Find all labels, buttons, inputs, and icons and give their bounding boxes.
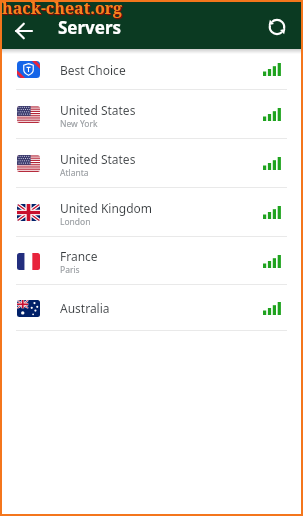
staticText: France: [60, 248, 98, 264]
button[interactable]: Australia: [0, 285, 303, 331]
button[interactable]: [13, 23, 33, 39]
staticText: Australia: [60, 300, 110, 316]
staticText: Paris: [60, 264, 80, 276]
staticText: London: [60, 216, 91, 228]
button[interactable]: United States: [0, 139, 303, 188]
staticText: Atlanta: [60, 167, 89, 179]
button[interactable]: United Kingdom: [0, 188, 303, 237]
staticText: New York: [60, 118, 98, 130]
staticText: Servers: [58, 16, 122, 39]
staticText: Best Choice: [60, 62, 126, 78]
button[interactable]: Best Choice: [0, 49, 303, 90]
button[interactable]: United States: [0, 90, 303, 139]
button[interactable]: [267, 17, 287, 37]
staticText: United States: [60, 151, 136, 167]
staticText: hack-cheat.org: [2, 0, 123, 19]
staticText: United States: [60, 102, 136, 118]
staticText: United Kingdom: [60, 200, 153, 216]
button[interactable]: France: [0, 237, 303, 285]
